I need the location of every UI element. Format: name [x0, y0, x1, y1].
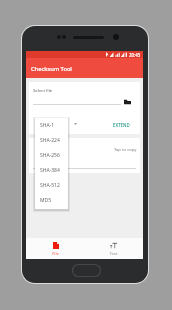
staticText: 20:45 [129, 52, 141, 58]
button[interactable]: SHA-384 [35, 163, 68, 178]
staticText: MD5 [40, 197, 52, 204]
button[interactable]: SHA-1 [35, 118, 68, 133]
button[interactable]: Text [84, 238, 143, 259]
button[interactable]: EXTEND [112, 121, 131, 129]
staticText: Select file [33, 87, 53, 93]
staticText: SHA-384 [40, 167, 60, 174]
staticText: SHA-224 [40, 137, 60, 144]
button[interactable]: SHA-512 [35, 178, 68, 193]
staticText: Tap to copy [114, 147, 137, 153]
staticText: Checksum Tool [31, 65, 72, 73]
staticText: SHA-256 [40, 152, 60, 159]
button[interactable]: Browse files [121, 95, 134, 108]
staticText: EXTEND [113, 122, 130, 128]
staticText: File [52, 251, 59, 257]
staticText: SHA-1 [40, 122, 55, 129]
button[interactable]: SHA-224 [35, 133, 68, 148]
button[interactable]: File [26, 238, 84, 259]
staticText: Text [109, 251, 118, 257]
staticText: SHA-512 [40, 182, 60, 189]
button[interactable]: MD5 [35, 193, 68, 208]
button[interactable]: SHA-256 [35, 148, 68, 163]
